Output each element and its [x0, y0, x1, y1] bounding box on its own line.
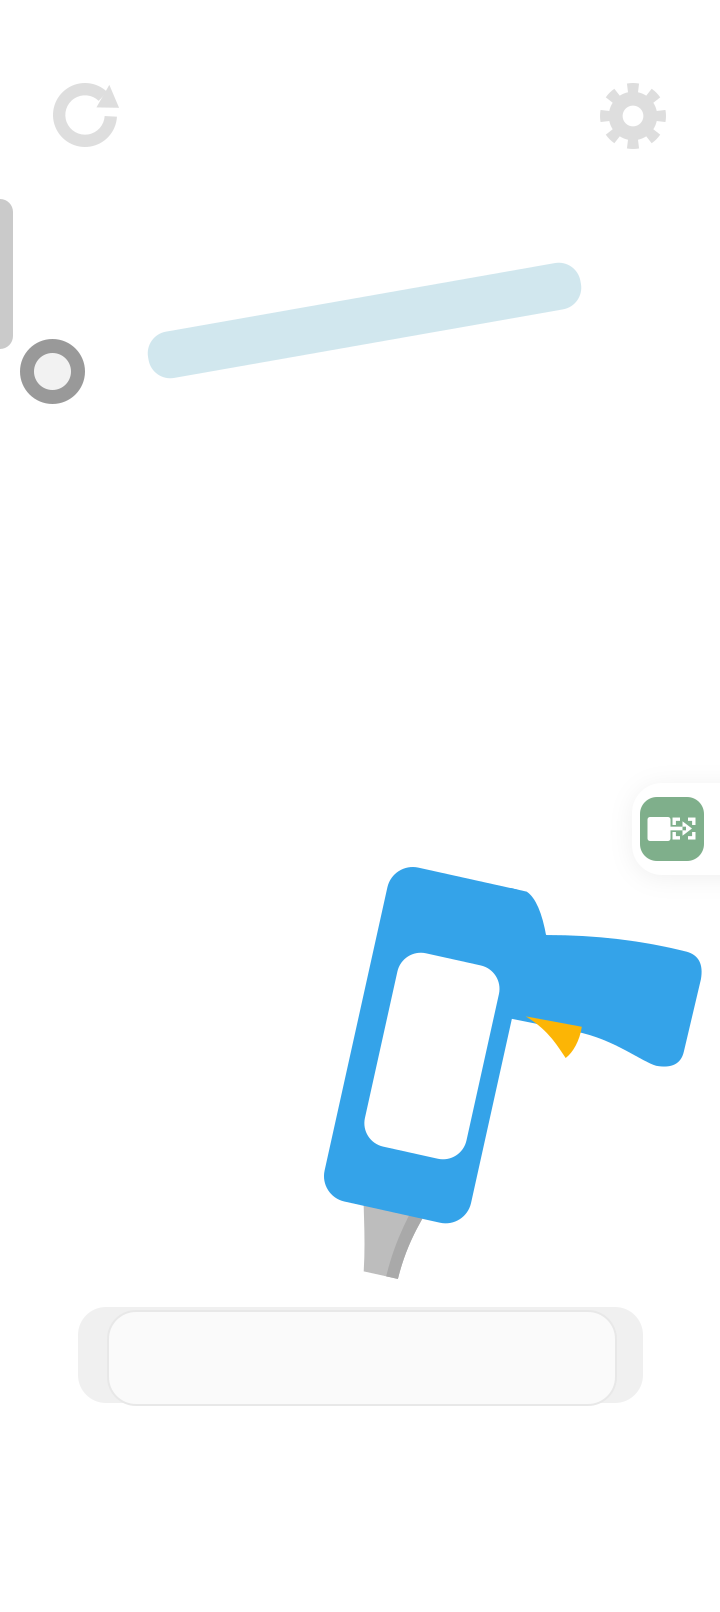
button[interactable]: Restart	[37, 67, 133, 163]
button[interactable]: Settings	[585, 68, 681, 164]
button[interactable]: Transfer	[632, 783, 720, 875]
